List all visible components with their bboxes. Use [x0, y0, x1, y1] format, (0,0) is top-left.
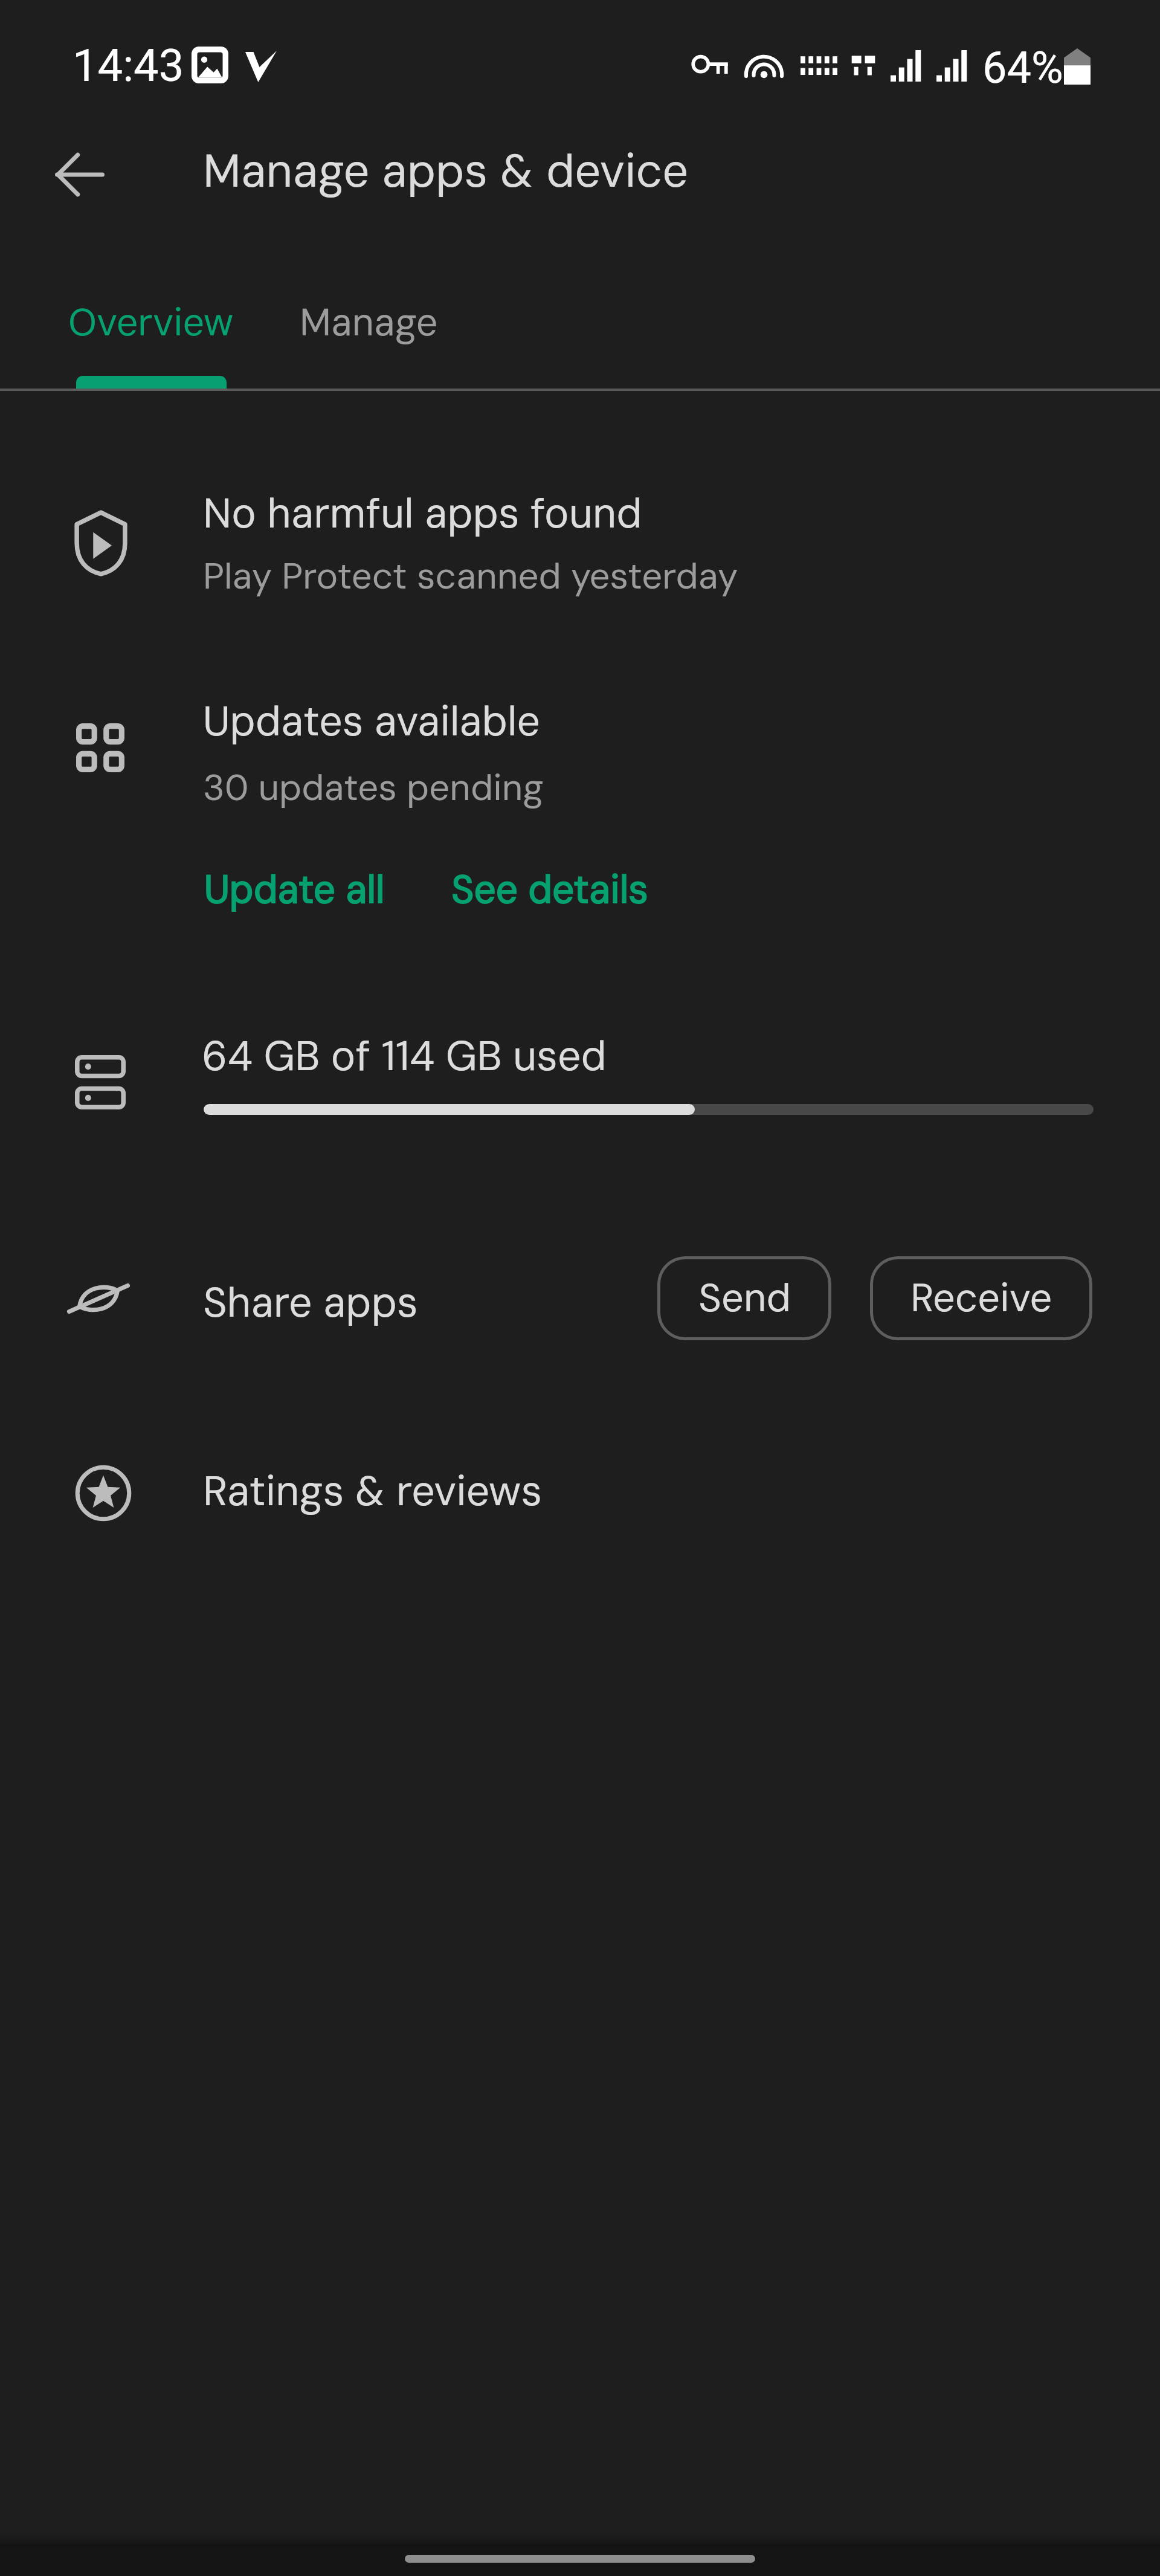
button[interactable]: Back: [31, 126, 128, 223]
staticText: 64 GB of 114 GB used: [202, 1030, 607, 1083]
staticText: See details: [451, 865, 648, 915]
button[interactable]: Overview: [37, 248, 264, 391]
button[interactable]: Share apps: [0, 1234, 634, 1363]
button[interactable]: Update all: [192, 856, 397, 923]
button[interactable]: Manage: [256, 248, 482, 391]
staticText: Play Protect scanned yesterday: [203, 552, 738, 599]
button[interactable]: No harmful apps found: [0, 459, 1160, 616]
button[interactable]: Receive: [870, 1256, 1092, 1340]
staticText: Update all: [204, 865, 385, 915]
staticText: 64%: [982, 42, 1063, 93]
staticText: Updates available: [203, 695, 540, 749]
staticText: 14:43: [72, 39, 184, 92]
staticText: Manage: [300, 298, 438, 347]
staticText: Share apps: [203, 1276, 418, 1330]
staticText: No harmful apps found: [203, 487, 642, 541]
button[interactable]: 64 GB of 114 GB used: [0, 1015, 1160, 1148]
button[interactable]: See details: [439, 856, 660, 923]
button[interactable]: Send: [657, 1256, 831, 1340]
staticText: Overview: [68, 298, 234, 347]
staticText: Send: [698, 1273, 791, 1324]
staticText: 30 updates pending: [203, 764, 544, 811]
button[interactable]: Ratings & reviews: [0, 1426, 1160, 1559]
button[interactable]: Updates available: [0, 667, 1160, 824]
staticText: Manage apps & device: [203, 141, 689, 201]
staticText: Receive: [910, 1273, 1052, 1324]
staticText: Ratings & reviews: [203, 1465, 543, 1519]
